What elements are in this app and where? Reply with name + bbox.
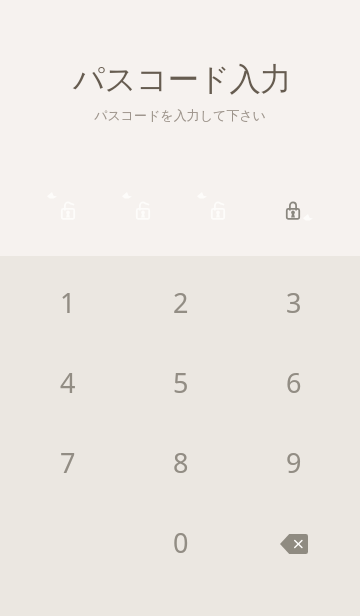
- staticText: 5: [173, 364, 189, 401]
- button[interactable]: 3: [237, 262, 350, 342]
- button[interactable]: 6: [237, 342, 350, 422]
- staticText: パスコードを入力して下さい: [94, 107, 266, 123]
- staticText: 0: [173, 524, 189, 561]
- staticText: 3: [286, 284, 302, 321]
- staticText: 6: [286, 364, 302, 401]
- staticText: 4: [60, 364, 76, 401]
- button[interactable]: 5: [124, 342, 237, 422]
- button[interactable]: 9: [237, 422, 350, 502]
- button[interactable]: 1: [11, 262, 124, 342]
- staticText: 1: [60, 284, 76, 321]
- staticText: 8: [173, 444, 189, 481]
- staticText: 2: [173, 284, 189, 321]
- button[interactable]: 4: [11, 342, 124, 422]
- button[interactable]: 2: [124, 262, 237, 342]
- staticText: パスコード入力: [73, 60, 291, 100]
- button[interactable]: 0: [124, 502, 237, 582]
- button[interactable]: 7: [11, 422, 124, 502]
- button[interactable]: 8: [124, 422, 237, 502]
- staticText: 9: [286, 444, 302, 481]
- button[interactable]: Delete: [237, 502, 350, 582]
- staticText: 7: [60, 444, 76, 481]
